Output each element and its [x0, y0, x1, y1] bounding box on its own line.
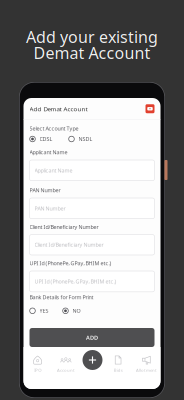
staticText: CDSL [39, 135, 52, 143]
button[interactable]: Applicant Name [29, 160, 154, 181]
staticText: NSDL [78, 135, 92, 143]
staticText: Add your existing [26, 26, 158, 48]
staticText: Applicant Name [34, 167, 72, 174]
button[interactable]: Add [82, 350, 102, 370]
button[interactable]: Watch tutorial video [145, 104, 154, 113]
button[interactable]: Bids [104, 356, 132, 372]
staticText: Client Id/Beneficiary Number [29, 223, 98, 230]
button[interactable]: CDSL [29, 135, 52, 142]
button[interactable]: Client Id/Beneficiary Number [29, 235, 154, 255]
button[interactable]: ADD [29, 328, 154, 347]
staticText: UPI Id (PhonePe, GPay, BHIM etc.) [29, 260, 111, 267]
staticText: PAN Number [34, 205, 65, 212]
staticText: Bids [114, 367, 123, 373]
button[interactable]: NSDL [68, 135, 92, 142]
staticText: Account [57, 367, 75, 373]
staticText: Applicant Name [29, 149, 67, 156]
staticText: Allotment [136, 367, 157, 373]
staticText: IPO [34, 367, 41, 373]
button[interactable]: Allotment [132, 356, 160, 372]
staticText: YES [39, 307, 48, 314]
staticText: PAN Number [29, 187, 60, 194]
staticText: Select Account Type [29, 125, 78, 132]
staticText: ADD [86, 334, 98, 341]
staticText: Demat Account [33, 42, 150, 64]
button[interactable]: NO [62, 307, 80, 314]
button[interactable]: PAN Number [29, 198, 154, 219]
staticText: NO [72, 307, 80, 314]
button[interactable]: Account [52, 356, 80, 372]
staticText: Bank Details for Form Print [29, 294, 93, 301]
staticText: Client Id/Beneficiary Number [34, 241, 103, 248]
staticText: UPI Id (PhonePe, GPay, BHIM etc.) [34, 278, 116, 285]
button[interactable]: YES [29, 307, 48, 314]
button[interactable]: UPI Id (PhonePe, GPay, BHIM etc.) [29, 271, 154, 292]
staticText: Add Demat Account [29, 105, 87, 113]
button[interactable]: IPO [23, 356, 52, 372]
